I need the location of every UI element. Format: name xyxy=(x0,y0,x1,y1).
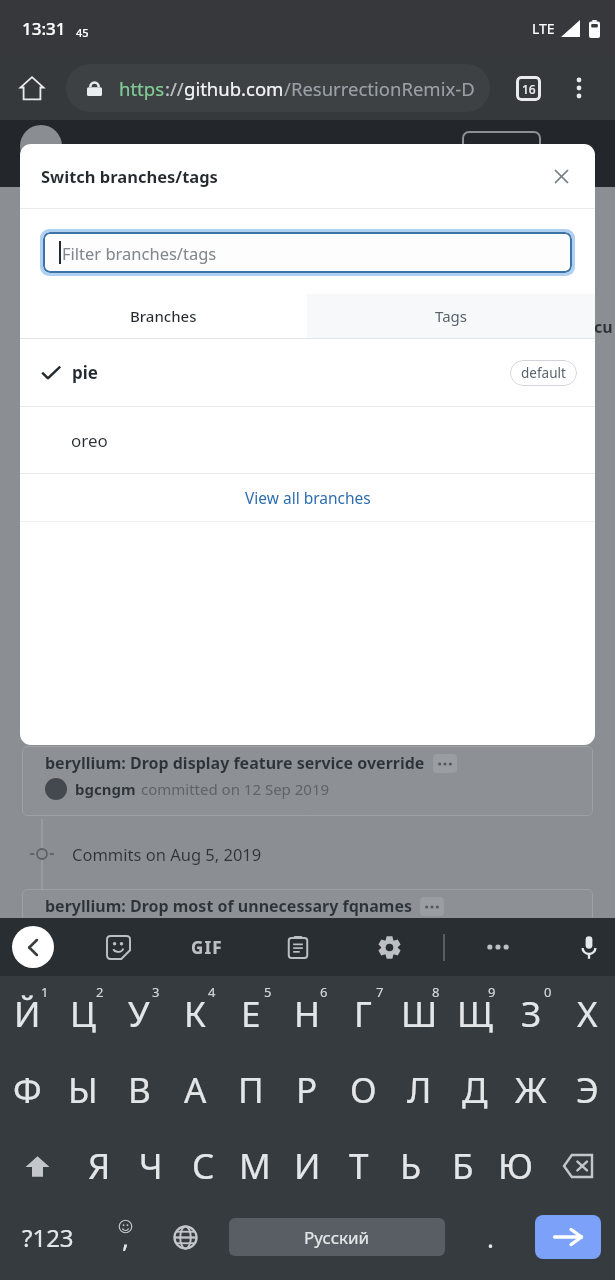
button[interactable]: Close xyxy=(541,156,581,196)
staticText: Commits on Aug 5, 2019 xyxy=(72,843,262,865)
staticText: bgcngm xyxy=(75,779,136,799)
staticText: С xyxy=(192,1142,215,1190)
staticText: Д xyxy=(462,1066,488,1114)
staticText: 4 xyxy=(208,983,216,1001)
button[interactable]: Ш xyxy=(391,976,447,1052)
staticText: ?123 xyxy=(22,1221,74,1254)
button[interactable]: Ь xyxy=(385,1128,437,1204)
button[interactable]: Ы xyxy=(55,1052,111,1128)
button[interactable]: GIF xyxy=(183,923,231,971)
button[interactable]: Й xyxy=(0,976,55,1052)
button[interactable]: Shift xyxy=(0,1128,74,1204)
button[interactable]: . xyxy=(460,1199,520,1275)
button[interactable]: К xyxy=(167,976,223,1052)
staticText: О xyxy=(350,1066,377,1114)
button[interactable]: Clipboard xyxy=(274,918,322,976)
staticText: П xyxy=(238,1066,264,1114)
button[interactable]: У xyxy=(111,976,167,1052)
button[interactable]: В xyxy=(111,1052,167,1128)
staticText: Русский xyxy=(304,1226,370,1249)
button[interactable]: А xyxy=(167,1052,223,1128)
staticText: Щ xyxy=(457,990,493,1038)
button[interactable]: Т xyxy=(333,1128,385,1204)
staticText: beryllium: Drop display feature service … xyxy=(45,752,425,774)
staticText: 3 xyxy=(152,983,160,1001)
button[interactable]: Е xyxy=(223,976,279,1052)
button[interactable]: Voice input xyxy=(565,918,613,976)
button[interactable]: Х xyxy=(559,976,615,1052)
button[interactable]: М xyxy=(229,1128,281,1204)
button[interactable]: Change language xyxy=(155,1199,215,1275)
button[interactable]: Р xyxy=(279,1052,335,1128)
button[interactable]: Enter xyxy=(535,1215,601,1259)
staticText: committed on 12 Sep 2019 xyxy=(141,779,330,799)
staticText: Switch branches/tags xyxy=(41,165,218,187)
staticText: 2 xyxy=(96,983,104,1001)
button[interactable]: Ц xyxy=(55,976,111,1052)
button[interactable]: oreo xyxy=(20,407,595,473)
button[interactable]: О xyxy=(335,1052,391,1128)
staticText: Ш xyxy=(401,990,438,1038)
staticText: , xyxy=(122,1220,129,1254)
button[interactable]: С xyxy=(177,1128,229,1204)
staticText: 7 xyxy=(376,983,384,1001)
staticText: И xyxy=(294,1142,321,1190)
staticText: pie xyxy=(72,361,98,384)
button[interactable]: More xyxy=(474,918,522,976)
button[interactable]: Л xyxy=(391,1052,447,1128)
staticText: Е xyxy=(241,990,261,1038)
staticText: 6 xyxy=(320,983,328,1001)
staticText: В xyxy=(128,1066,151,1114)
button[interactable]: Щ xyxy=(447,976,503,1052)
button[interactable]: Г xyxy=(335,976,391,1052)
button[interactable]: Tabs xyxy=(504,64,552,112)
button[interactable]: Settings xyxy=(365,918,413,976)
staticText: Branches xyxy=(130,306,197,326)
button[interactable]: З xyxy=(503,976,559,1052)
button[interactable]: Д xyxy=(447,1052,503,1128)
staticText: Ф xyxy=(13,1066,42,1114)
button[interactable]: Б xyxy=(437,1128,489,1204)
staticText: oreo xyxy=(71,429,108,452)
button[interactable]: Н xyxy=(279,976,335,1052)
button[interactable]: Ж xyxy=(503,1052,559,1128)
button[interactable]: Emoji xyxy=(95,1199,155,1275)
staticText: 45 xyxy=(76,25,89,40)
button[interactable]: ?123 xyxy=(8,1199,88,1275)
staticText: 0 xyxy=(544,983,552,1001)
button[interactable]: Я xyxy=(74,1128,125,1204)
staticText: :// xyxy=(165,76,184,101)
button[interactable]: https xyxy=(66,64,490,112)
staticText: default xyxy=(521,364,566,382)
button[interactable]: Э xyxy=(559,1052,615,1128)
staticText: М xyxy=(239,1142,271,1190)
staticText: Л xyxy=(407,1066,432,1114)
button[interactable]: Backspace xyxy=(541,1128,615,1204)
button[interactable]: П xyxy=(223,1052,279,1128)
button[interactable]: Tags xyxy=(307,294,595,338)
staticText: З xyxy=(521,990,542,1038)
button[interactable]: Ф xyxy=(0,1052,55,1128)
button[interactable]: View all branches xyxy=(20,474,595,521)
button[interactable] xyxy=(94,918,142,976)
button[interactable]: Ч xyxy=(125,1128,177,1204)
staticText: github.com xyxy=(184,76,284,101)
button[interactable]: Home xyxy=(8,64,56,112)
staticText: 16 xyxy=(522,81,536,97)
button[interactable]: Ю xyxy=(489,1128,541,1204)
staticText: Ю xyxy=(498,1142,533,1190)
staticText: У xyxy=(128,990,150,1038)
staticText: К xyxy=(184,990,206,1038)
button[interactable]: Branches xyxy=(20,294,307,338)
staticText: Tags xyxy=(435,306,467,326)
staticText: Х xyxy=(577,990,598,1038)
staticText: LTE xyxy=(532,19,555,38)
button[interactable]: Русский xyxy=(229,1218,445,1256)
staticText: View all branches xyxy=(245,487,371,508)
staticText: Ц xyxy=(70,990,96,1038)
button[interactable]: More options xyxy=(555,64,603,112)
button[interactable]: Filter branches/tags xyxy=(43,232,572,273)
button[interactable]: Back xyxy=(12,926,54,968)
button[interactable]: pie xyxy=(20,339,595,406)
button[interactable]: И xyxy=(281,1128,333,1204)
